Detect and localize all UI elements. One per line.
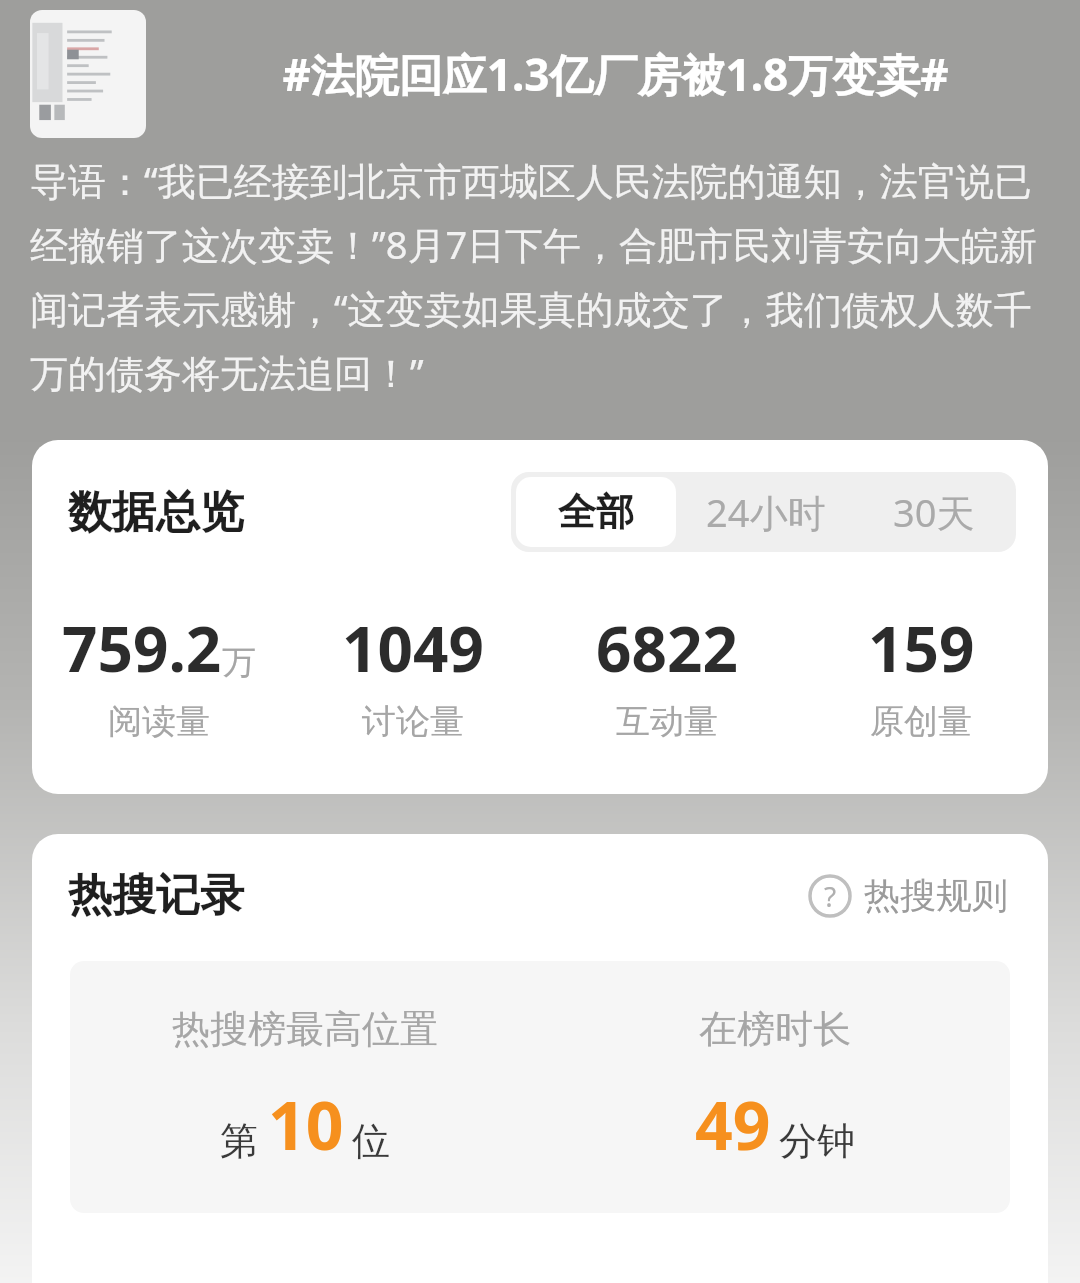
button[interactable]: 预览截图 — [30, 10, 146, 138]
staticText: 阅读量 — [108, 700, 210, 743]
staticText: 热搜规则 — [864, 873, 1008, 918]
button[interactable]: 1049 — [286, 606, 540, 743]
staticText: 第 — [220, 1117, 258, 1165]
button[interactable]: 759.2 — [32, 606, 286, 743]
staticText: 159 — [868, 606, 975, 690]
staticText: 数据总览 — [68, 485, 244, 540]
staticText: #法院回应1.3亿厂房被1.8万变卖# — [282, 44, 949, 104]
button[interactable]: 159 — [794, 606, 1048, 743]
staticText: 49 — [695, 1079, 771, 1169]
staticText: 分钟 — [779, 1117, 855, 1165]
staticText: 全部 — [558, 488, 634, 536]
staticText: 在榜时长 — [699, 1005, 851, 1053]
button[interactable]: 全部 — [516, 477, 676, 547]
staticText: 1049 — [342, 606, 484, 690]
staticText: 互动量 — [616, 700, 718, 743]
staticText: 30天 — [893, 486, 975, 538]
staticText: 万 — [222, 641, 256, 684]
button[interactable]: 30天 — [851, 472, 1016, 552]
button[interactable]: 热搜榜最高位置 — [70, 1005, 540, 1169]
staticText: 原创量 — [870, 700, 972, 743]
staticText: 6822 — [596, 606, 738, 690]
staticText: 热搜榜最高位置 — [172, 1005, 438, 1053]
staticText: ? — [824, 877, 837, 915]
staticText: 24小时 — [706, 486, 826, 538]
staticText: 10 — [268, 1079, 344, 1169]
staticText: 导语：“我已经接到北京市西城区人民法院的通知，法官说已经撤销了这次变卖！”8月7… — [30, 154, 1044, 398]
button[interactable]: 在榜时长 — [540, 1005, 1010, 1169]
other: 热搜规则说明 — [808, 874, 852, 918]
button[interactable]: 24小时 — [681, 472, 851, 552]
button[interactable]: 热搜规则说明 — [804, 869, 1012, 922]
staticText: 位 — [352, 1117, 390, 1165]
staticText: 热搜记录 — [68, 868, 244, 923]
staticText: 759.2 — [62, 606, 222, 690]
button[interactable]: 6822 — [540, 606, 794, 743]
staticText: 讨论量 — [362, 700, 464, 743]
